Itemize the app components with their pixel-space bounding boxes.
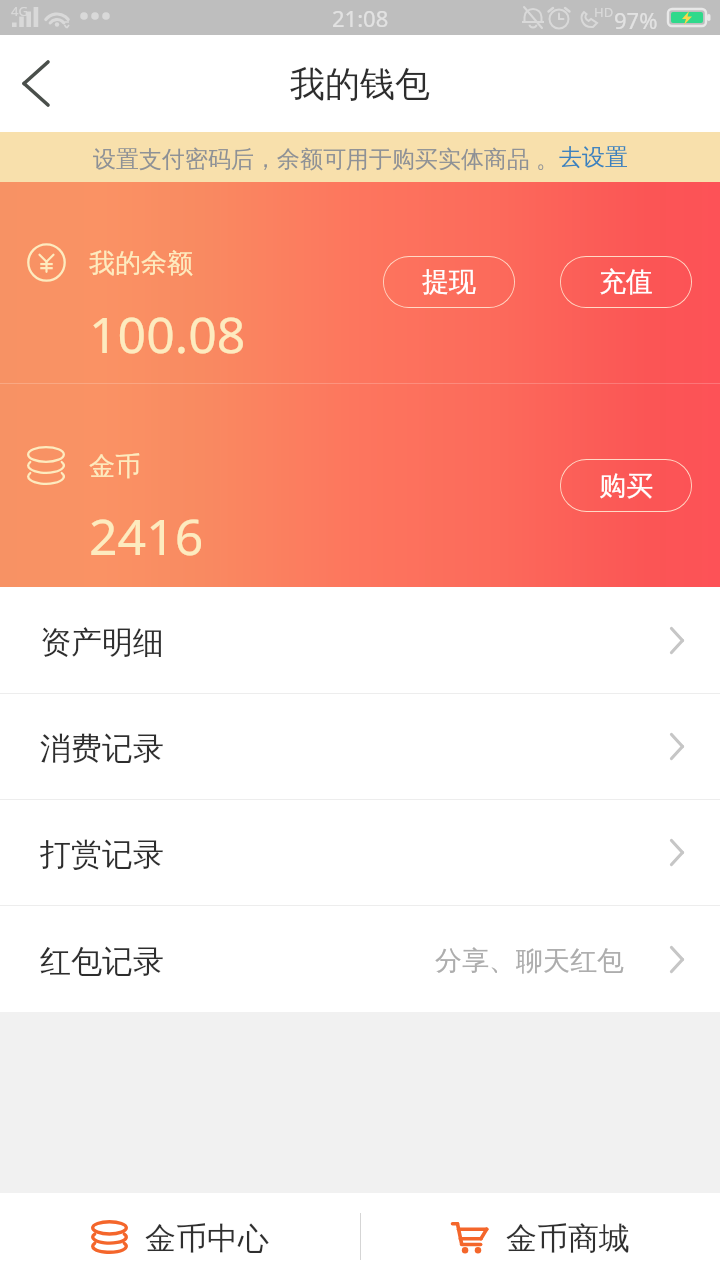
staticText: 2416 [89,502,204,570]
button[interactable]: Back [0,35,72,132]
staticText: 消费记录 [40,729,164,768]
staticText: 提现 [422,265,476,299]
button[interactable]: 金币商城 [360,1193,720,1280]
staticText: 设置支付密码后，余额可用于购买实体商品 。 [93,142,559,173]
staticText: 21:08 [332,3,389,33]
staticText: HD [594,3,614,21]
button[interactable]: 资产明细 [0,587,720,694]
staticText: 我的余额 [89,247,193,280]
button[interactable]: 充值 [560,256,692,308]
staticText: 红包记录 [40,942,164,981]
staticText: 97% [614,5,658,35]
button[interactable]: 购买 [560,459,692,512]
staticText: 金币中心 [145,1219,269,1258]
staticText: 100.08 [89,300,246,368]
staticText: 分享、聊天红包 [435,944,624,978]
button[interactable]: 提现 [383,256,515,308]
staticText: 4G [11,2,28,20]
button[interactable]: 打赏记录 [0,800,720,906]
staticText: 打赏记录 [40,835,164,874]
staticText: 金币商城 [506,1219,630,1258]
staticText: 去设置 [559,143,628,172]
staticText: 金币 [89,450,141,483]
button[interactable]: 红包记录 [0,906,720,1012]
staticText: 资产明细 [40,623,164,662]
staticText: 我的钱包 [290,62,430,106]
button[interactable]: 金币中心 [0,1193,360,1280]
button[interactable]: 消费记录 [0,694,720,800]
staticText: 购买 [599,469,653,503]
button[interactable]: 去设置 [559,143,628,172]
staticText: 充值 [599,265,653,299]
